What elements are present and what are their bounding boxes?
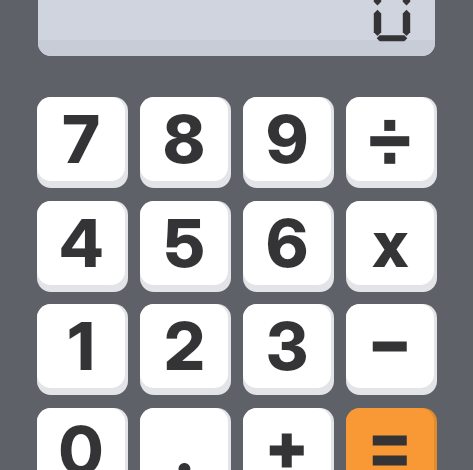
button[interactable]: 5 — [140, 201, 231, 292]
button[interactable]: 6 — [243, 201, 334, 292]
button[interactable]: . — [140, 408, 231, 470]
button[interactable]: 4 — [37, 201, 128, 292]
button[interactable]: Equals — [346, 408, 437, 470]
button[interactable]: 9 — [243, 97, 334, 188]
button[interactable]: 3 — [243, 304, 334, 395]
button[interactable]: 8 — [140, 97, 231, 188]
button[interactable]: x — [346, 201, 437, 292]
staticText: 8 — [163, 99, 205, 179]
button[interactable]: Divide — [346, 97, 437, 188]
button[interactable]: 7 — [37, 97, 128, 188]
staticText: 3 — [266, 306, 308, 386]
staticText: 6 — [266, 203, 308, 283]
staticText: 1 — [68, 306, 95, 386]
staticText: 7 — [62, 99, 100, 179]
button[interactable]: 1 — [37, 304, 128, 395]
staticText: . — [176, 410, 193, 470]
staticText: 5 — [164, 203, 205, 283]
staticText: 9 — [266, 99, 308, 179]
button[interactable]: Subtract — [346, 304, 437, 395]
staticText: 4 — [59, 203, 104, 283]
staticText: x — [372, 203, 409, 283]
button[interactable]: 0 — [37, 408, 128, 470]
staticText: 2 — [164, 306, 205, 386]
button[interactable]: 2 — [140, 304, 231, 395]
button[interactable]: Add — [243, 408, 334, 470]
staticText: 0 — [59, 410, 103, 470]
